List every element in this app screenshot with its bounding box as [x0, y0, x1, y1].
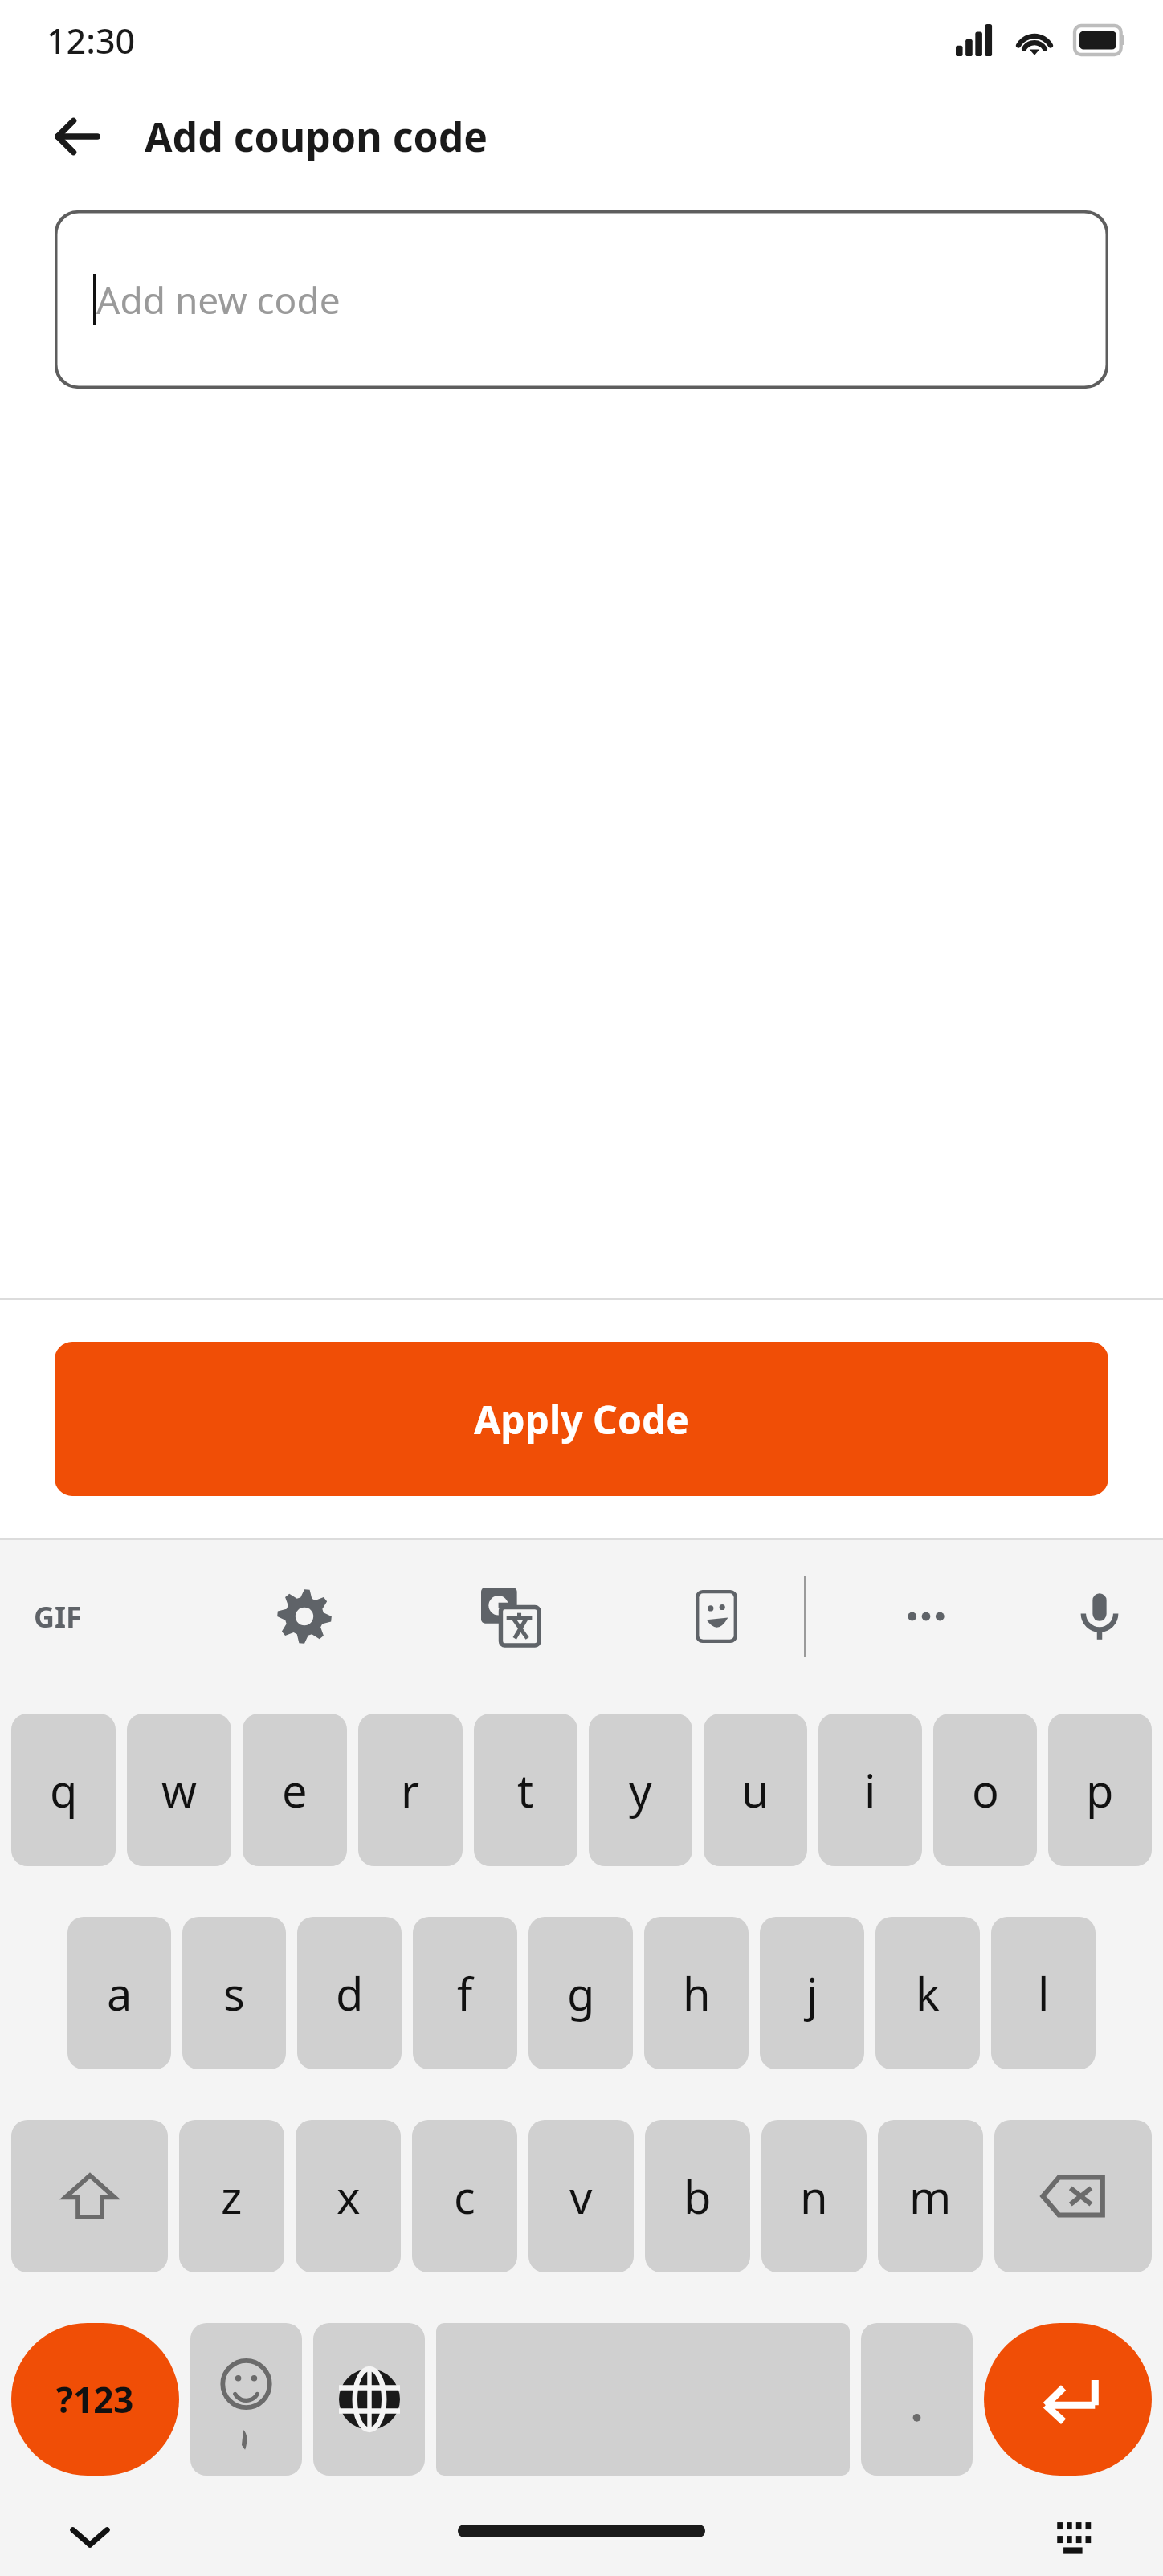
button[interactable]: q — [11, 1714, 116, 1866]
staticText: m — [909, 2166, 952, 2227]
button[interactable]: Stickers — [679, 1579, 754, 1654]
button[interactable]: Enter — [984, 2323, 1152, 2476]
button[interactable]: Apply Code — [55, 1342, 1108, 1496]
staticText: t — [517, 1759, 534, 1820]
staticText: c — [454, 2166, 475, 2227]
staticText: ?123 — [56, 2375, 134, 2423]
button[interactable]: s — [182, 1917, 286, 2069]
button[interactable]: l — [991, 1917, 1096, 2069]
staticText: q — [50, 1759, 78, 1820]
staticText: e — [282, 1759, 308, 1820]
button[interactable]: w — [127, 1714, 231, 1866]
button[interactable]: u — [704, 1714, 807, 1866]
button[interactable]: Shift — [11, 2120, 168, 2272]
button[interactable]: h — [644, 1917, 749, 2069]
button[interactable]: y — [589, 1714, 692, 1866]
button[interactable]: Add new code — [55, 210, 1108, 389]
staticText: 12:30 — [47, 17, 136, 64]
staticText: i — [864, 1759, 876, 1820]
staticText: u — [741, 1759, 769, 1820]
staticText: Add new code — [96, 275, 341, 325]
staticText: g — [567, 1963, 595, 2024]
button[interactable]: d — [297, 1917, 402, 2069]
staticText: s — [223, 1963, 245, 2024]
button[interactable]: Backspace — [994, 2120, 1152, 2272]
button[interactable]: p — [1048, 1714, 1152, 1866]
button[interactable]: r — [358, 1714, 463, 1866]
button[interactable]: Switch keyboard — [1044, 2503, 1112, 2570]
button[interactable]: b — [645, 2120, 750, 2272]
button[interactable]: More options — [888, 1579, 964, 1654]
staticText: j — [806, 1963, 818, 2024]
button[interactable]: Translate — [472, 1579, 548, 1654]
staticText: b — [684, 2166, 712, 2227]
button[interactable]: Emoji — [190, 2323, 302, 2476]
staticText: y — [629, 1759, 652, 1820]
button[interactable]: ?123 — [11, 2323, 179, 2476]
staticText: n — [800, 2166, 828, 2227]
staticText: x — [337, 2166, 361, 2227]
staticText: Add coupon code — [145, 109, 488, 164]
button[interactable]: Voice input — [1062, 1579, 1137, 1654]
button[interactable]: o — [933, 1714, 1037, 1866]
button[interactable]: Space — [436, 2323, 850, 2476]
button[interactable]: e — [243, 1714, 347, 1866]
button[interactable]: t — [474, 1714, 577, 1866]
button[interactable]: i — [818, 1714, 922, 1866]
button[interactable]: f — [413, 1917, 517, 2069]
staticText: h — [683, 1963, 711, 2024]
staticText: f — [457, 1963, 473, 2024]
button[interactable]: GIF — [19, 1578, 96, 1655]
staticText: k — [916, 1963, 940, 2024]
button[interactable]: Keyboard settings — [267, 1579, 342, 1654]
staticText: a — [107, 1963, 133, 2024]
button[interactable]: k — [875, 1917, 980, 2069]
button[interactable]: a — [67, 1917, 171, 2069]
staticText: z — [221, 2166, 243, 2227]
staticText: o — [972, 1759, 999, 1820]
button[interactable]: Back — [48, 108, 106, 165]
button[interactable]: Hide keyboard — [56, 2503, 124, 2570]
button[interactable]: x — [296, 2120, 401, 2272]
button[interactable]: j — [760, 1917, 864, 2069]
button[interactable]: Change keyboard language — [313, 2323, 425, 2476]
staticText: w — [161, 1759, 198, 1820]
staticText: GIF — [34, 1597, 82, 1636]
button[interactable]: m — [878, 2120, 983, 2272]
staticText: r — [401, 1759, 420, 1820]
staticText: d — [336, 1963, 364, 2024]
button[interactable]: c — [412, 2120, 517, 2272]
button[interactable]: g — [528, 1917, 633, 2069]
staticText: l — [1038, 1963, 1050, 2024]
staticText: Apply Code — [474, 1393, 689, 1445]
staticText: v — [569, 2166, 593, 2227]
button[interactable]: n — [761, 2120, 867, 2272]
button[interactable]: v — [528, 2120, 634, 2272]
staticText: p — [1086, 1759, 1114, 1820]
button[interactable] — [861, 2323, 973, 2476]
button[interactable]: z — [179, 2120, 284, 2272]
